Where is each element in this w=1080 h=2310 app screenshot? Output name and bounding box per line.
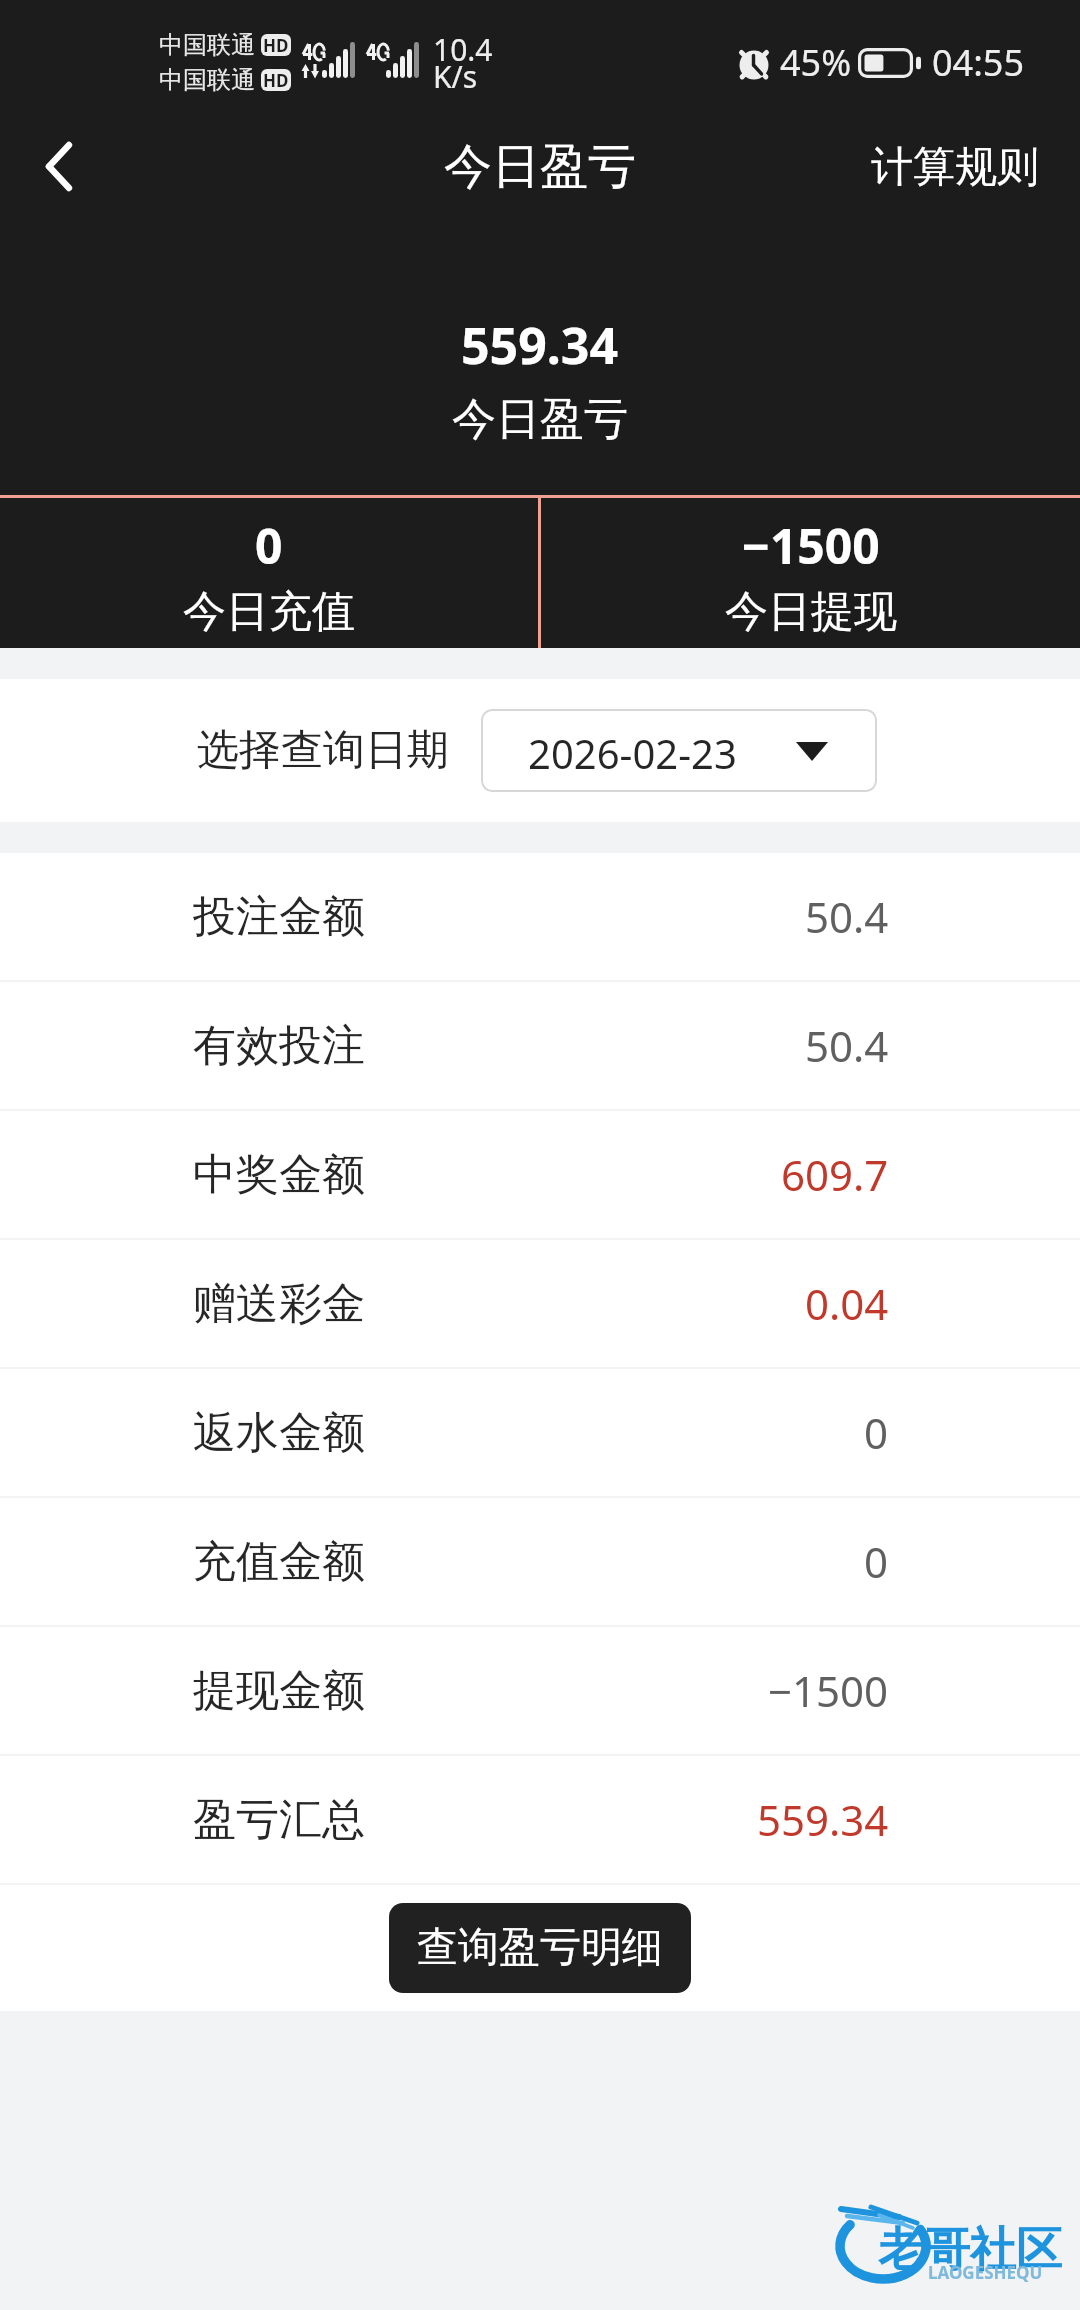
staticText: 0: [255, 513, 283, 578]
staticText: 04:55: [932, 38, 1025, 87]
staticText: 609.7: [781, 1146, 889, 1203]
button[interactable]: 赠送彩金: [0, 1240, 1080, 1367]
staticText: −1500: [768, 1662, 889, 1719]
staticText: 10.4: [433, 29, 493, 70]
staticText: 559.34: [461, 311, 619, 379]
staticText: 有效投注: [193, 1019, 365, 1073]
staticText: 今日充值: [183, 585, 355, 639]
button[interactable]: 中奖金额: [0, 1111, 1080, 1238]
staticText: 0: [864, 1533, 889, 1590]
staticText: 盈亏汇总: [193, 1793, 365, 1847]
staticText: 老哥社区: [878, 2221, 1062, 2279]
button[interactable]: 充值金额: [0, 1498, 1080, 1625]
staticText: 今日盈亏: [444, 137, 636, 197]
staticText: 充值金额: [193, 1535, 365, 1589]
staticText: 今日提现: [725, 585, 897, 639]
staticText: 559.34: [757, 1791, 889, 1848]
staticText: 选择查询日期: [197, 724, 449, 777]
staticText: K/s: [433, 56, 478, 97]
button[interactable]: 盈亏汇总: [0, 1756, 1080, 1883]
staticText: 返水金额: [193, 1406, 365, 1460]
button[interactable]: 投注金额: [0, 853, 1080, 980]
button[interactable]: 有效投注: [0, 982, 1080, 1109]
button[interactable]: −1500: [541, 501, 1080, 651]
staticText: 中奖金额: [193, 1148, 365, 1202]
staticText: 赠送彩金: [193, 1277, 365, 1331]
staticText: 中国联通: [159, 65, 255, 95]
staticText: 查询盈亏明细: [417, 1922, 663, 1974]
staticText: 2026-02-23: [528, 726, 737, 780]
staticText: 50.4: [805, 1017, 889, 1074]
button[interactable]: 提现金额: [0, 1627, 1080, 1754]
staticText: 0.04: [805, 1275, 889, 1332]
button[interactable]: 返水金额: [0, 1369, 1080, 1496]
staticText: −1500: [742, 513, 880, 578]
staticText: 50.4: [805, 888, 889, 945]
staticText: 投注金额: [193, 890, 365, 944]
button[interactable]: Back: [9, 116, 109, 216]
staticText: 45%: [780, 38, 852, 87]
button[interactable]: 查询盈亏明细: [389, 1903, 691, 1993]
staticText: 计算规则: [871, 141, 1039, 194]
staticText: LAOGESHEQU: [928, 2261, 1043, 2284]
staticText: 0: [864, 1404, 889, 1461]
staticText: 今日盈亏: [452, 392, 628, 447]
staticText: HD: [263, 69, 289, 91]
staticText: 提现金额: [193, 1664, 365, 1718]
button[interactable]: 0: [0, 501, 538, 651]
staticText: HD: [263, 34, 289, 56]
staticText: 中国联通: [159, 30, 255, 60]
button[interactable]: 2026-02-23: [481, 709, 877, 792]
button[interactable]: 计算规则: [851, 125, 1080, 210]
